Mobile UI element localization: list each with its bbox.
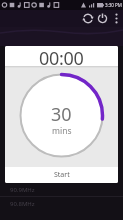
button[interactable] <box>97 10 111 27</box>
staticText: 3:30 PM <box>105 2 122 8</box>
button[interactable]: Start <box>5 167 118 183</box>
staticText: mins <box>52 125 72 137</box>
button[interactable]: 90.8MHz <box>0 197 123 210</box>
staticText: 90.8MHz <box>10 200 35 208</box>
staticText: 90.9MHz <box>10 186 35 194</box>
staticText: 30 <box>51 102 72 127</box>
button[interactable] <box>111 10 123 27</box>
staticText: Start <box>54 170 70 180</box>
button[interactable]: 90.9MHz <box>0 183 123 196</box>
button[interactable] <box>83 10 97 27</box>
staticText: 00:00 <box>39 46 84 66</box>
